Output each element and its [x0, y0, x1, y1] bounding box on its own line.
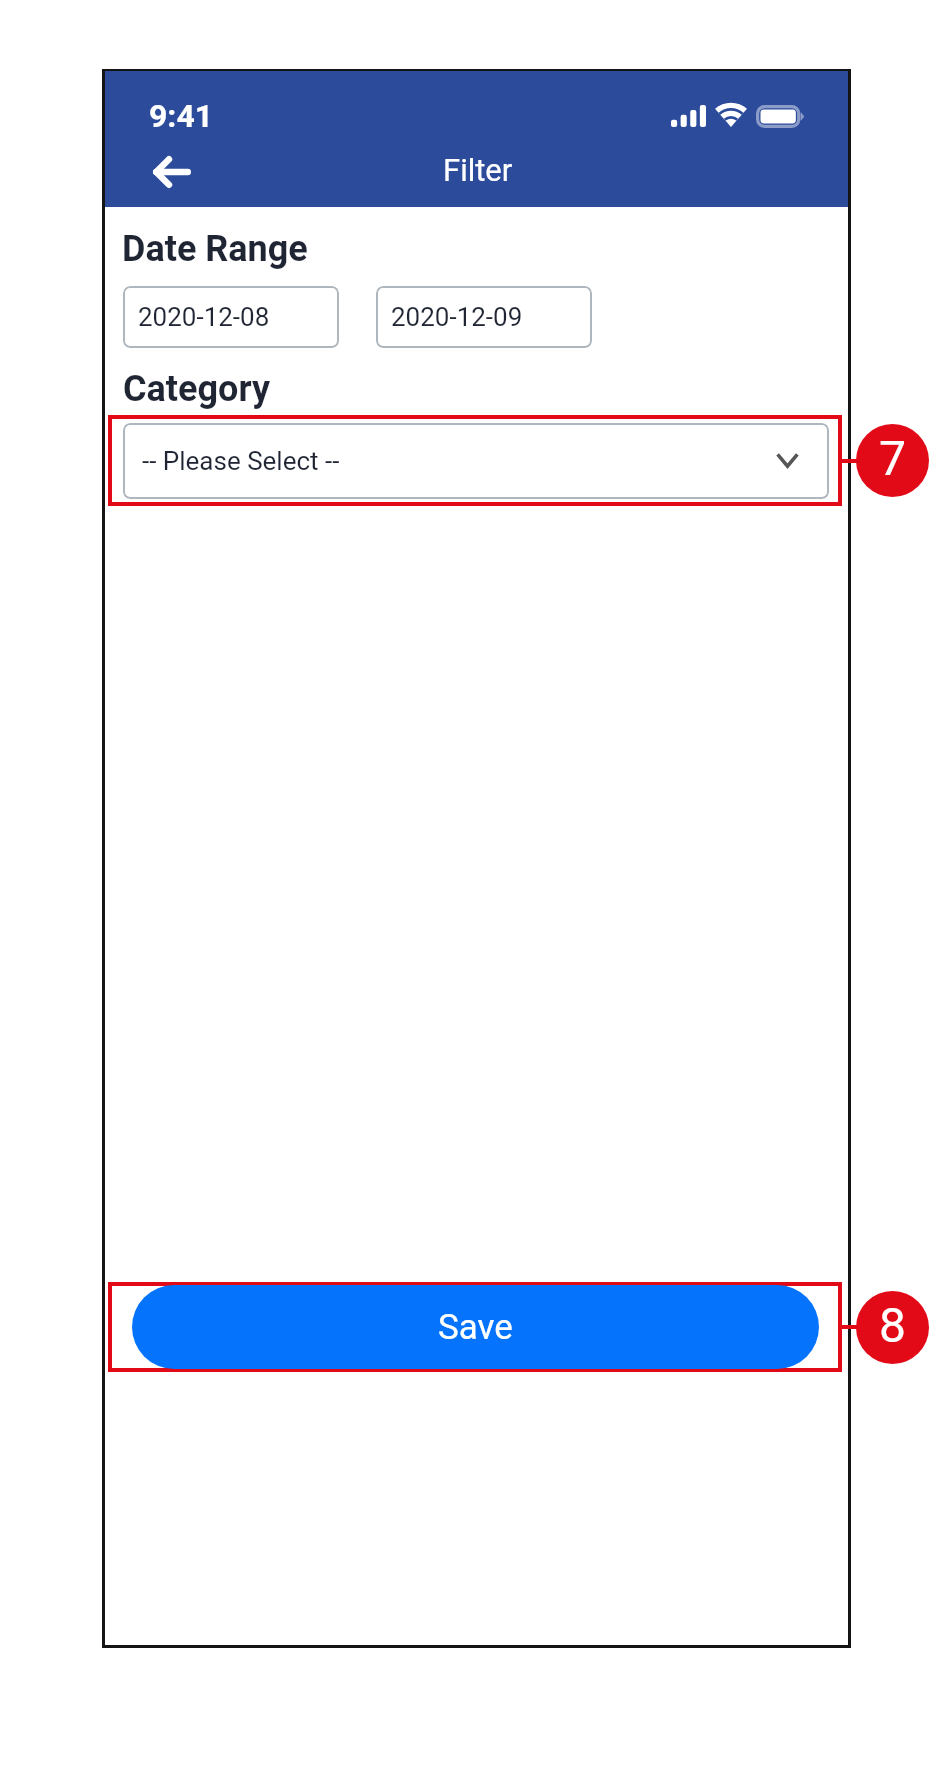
staticText: 7 — [879, 430, 906, 486]
button[interactable]: 2020-12-08 — [123, 286, 339, 348]
staticText: 2020-12-09 — [391, 302, 523, 332]
staticText: 8 — [879, 1297, 906, 1353]
staticText: -- Please Select -- — [142, 446, 340, 476]
staticText: 9:41 — [149, 97, 214, 135]
button[interactable]: -- Please Select -- — [123, 423, 829, 499]
staticText: Date Range — [122, 228, 308, 270]
staticText: Save — [438, 1307, 513, 1348]
staticText: Category — [123, 368, 270, 410]
staticText: 2020-12-08 — [138, 302, 270, 332]
button[interactable]: 2020-12-09 — [376, 286, 592, 348]
button[interactable]: Back — [142, 144, 202, 200]
staticText: Filter — [443, 152, 513, 188]
button[interactable]: Save — [132, 1285, 819, 1369]
